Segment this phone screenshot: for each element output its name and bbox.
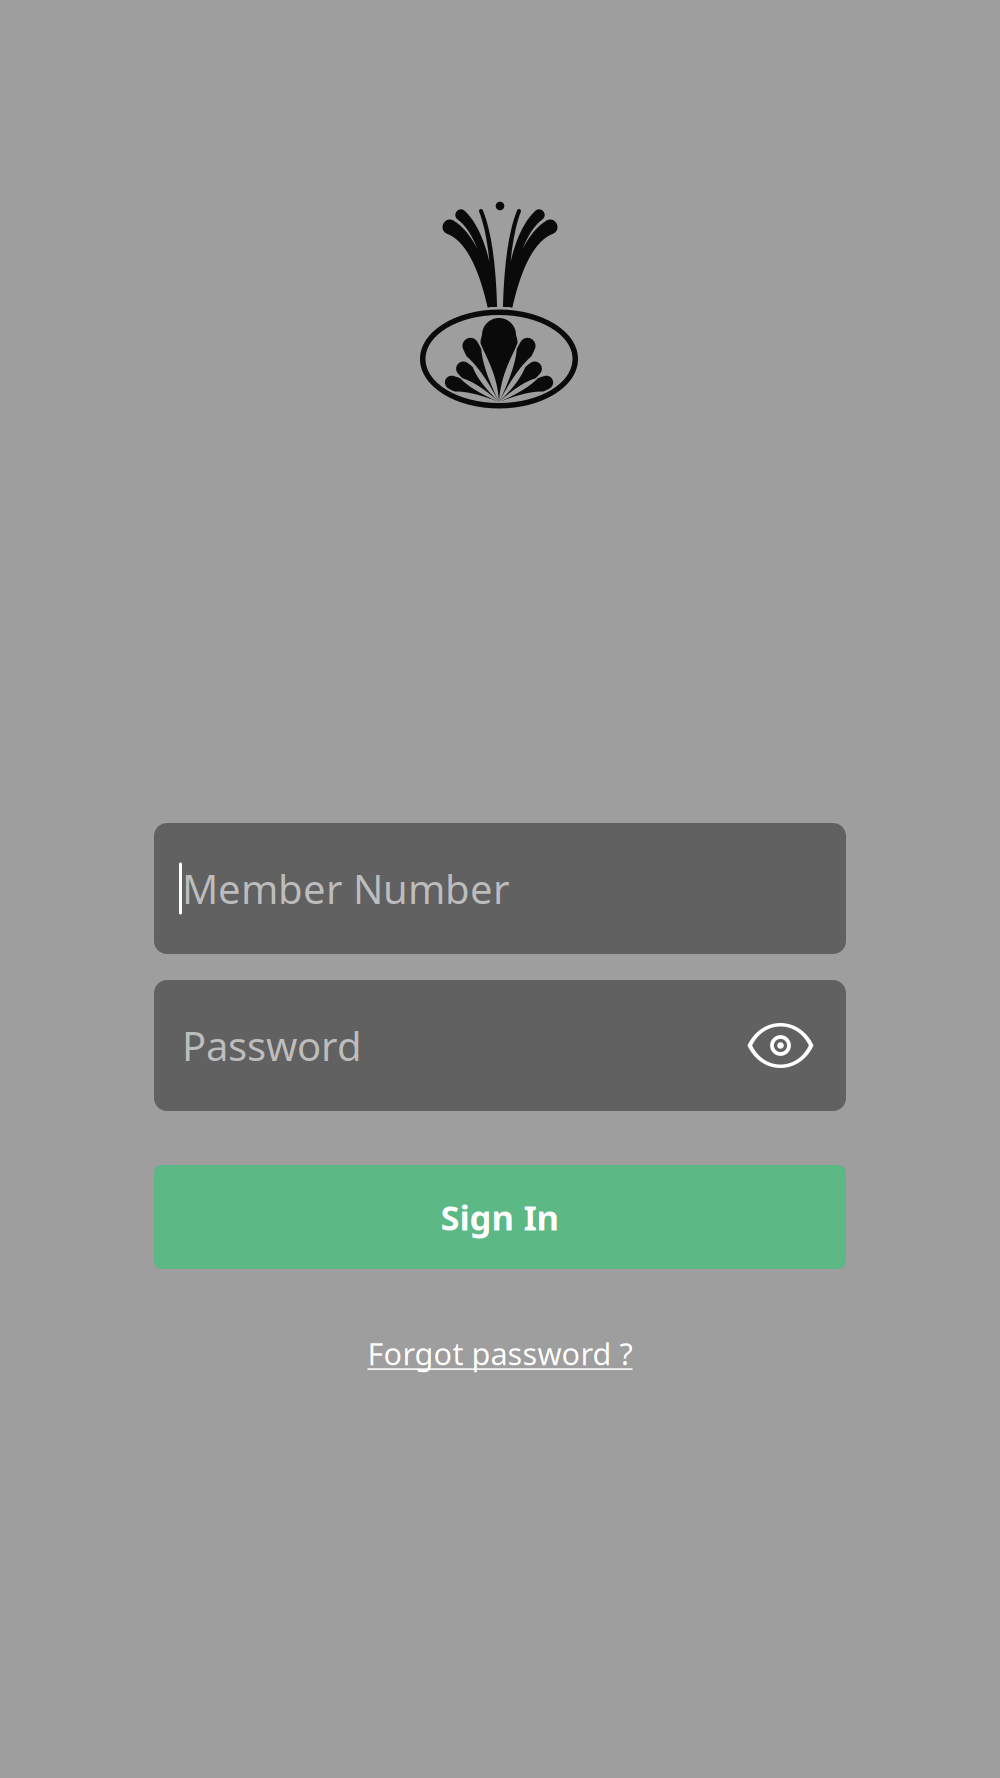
button[interactable]: Forgot password ?: [367, 1333, 632, 1374]
button[interactable]: Member Number: [154, 823, 846, 954]
staticText: Password: [182, 1019, 362, 1072]
staticText: Forgot password ?: [367, 1333, 632, 1374]
button[interactable]: Show password: [715, 980, 846, 1111]
button[interactable]: Sign In: [154, 1165, 846, 1269]
staticText: Sign In: [440, 1194, 559, 1240]
button[interactable]: Password: [154, 980, 715, 1111]
staticText: Member Number: [182, 862, 510, 915]
